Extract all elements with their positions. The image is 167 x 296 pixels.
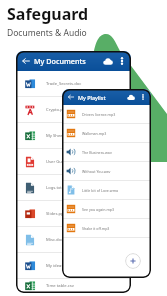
staticText: Trade_Secrets.doc bbox=[46, 81, 82, 87]
staticText: User Guide.pdf bbox=[46, 159, 76, 165]
other: More options bbox=[118, 57, 126, 65]
other: Cloud upload bbox=[127, 93, 135, 101]
button[interactable]: Back bbox=[16, 51, 131, 71]
button[interactable]: Time table.csv bbox=[16, 279, 131, 293]
other: More options bbox=[140, 94, 146, 100]
staticText: Time table.csv bbox=[46, 283, 74, 289]
button[interactable]: Slides.ppt bbox=[16, 201, 131, 226]
staticText: Safeguard bbox=[7, 3, 89, 25]
button[interactable]: Trade_Secrets.doc bbox=[16, 71, 131, 96]
button[interactable]: See you again.mp3 bbox=[62, 200, 151, 218]
button[interactable]: My ideas.doc bbox=[16, 253, 131, 278]
staticText: Drivers licence.mp3 bbox=[82, 112, 116, 117]
staticText: Without You.wav bbox=[82, 169, 111, 174]
button[interactable]: Crypto.pdf bbox=[16, 97, 131, 122]
other: Back bbox=[67, 93, 75, 101]
staticText: Little bit of Love.wma bbox=[82, 188, 119, 193]
staticText: Shake it off.mp3 bbox=[82, 226, 110, 231]
button[interactable]: Drivers licence.mp3 bbox=[62, 105, 151, 123]
staticText: Logs.txt bbox=[46, 185, 62, 191]
other: Cloud upload bbox=[103, 56, 113, 66]
staticText: Documents & Audio bbox=[7, 27, 87, 39]
button[interactable]: Shake it off.mp3 bbox=[62, 219, 151, 237]
button[interactable]: Little bit of Love.wma bbox=[62, 181, 151, 199]
button[interactable]: Add bbox=[125, 253, 141, 269]
staticText: Misc.doc bbox=[46, 237, 64, 243]
staticText: My Documents bbox=[34, 56, 86, 66]
button[interactable]: User Guide.pdf bbox=[16, 149, 131, 174]
button[interactable]: Back bbox=[62, 89, 151, 105]
staticText: The Business.wav bbox=[82, 150, 112, 155]
staticText: Crypto.pdf bbox=[46, 107, 67, 113]
staticText: My Sheet.xls bbox=[46, 133, 71, 139]
staticText: See you again.mp3 bbox=[82, 207, 115, 212]
staticText: Slides.ppt bbox=[46, 211, 66, 217]
staticText: My Playlist bbox=[78, 94, 106, 101]
staticText: My ideas.doc bbox=[46, 263, 72, 269]
staticText: Walkman.mp3 bbox=[82, 131, 107, 136]
button[interactable]: The Business.wav bbox=[62, 143, 151, 161]
button[interactable]: Without You.wav bbox=[62, 162, 151, 180]
button[interactable]: My Sheet.xls bbox=[16, 123, 131, 148]
other: Back bbox=[21, 56, 31, 66]
button[interactable]: Logs.txt bbox=[16, 175, 131, 200]
button[interactable]: Misc.doc bbox=[16, 227, 131, 252]
button[interactable]: Walkman.mp3 bbox=[62, 124, 151, 142]
